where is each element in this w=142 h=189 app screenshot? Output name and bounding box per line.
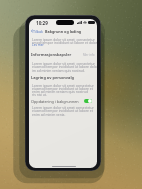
staticText: Lorem ipsum dolor sit amet, consectetur … bbox=[32, 61, 97, 65]
button[interactable]: Les mer bbox=[32, 43, 44, 47]
staticText: im ad minim veniam quis nostrud. bbox=[32, 68, 85, 72]
staticText: Informasjonskapsler bbox=[31, 52, 72, 57]
staticText: Lorem ipsum dolor sit amet consectetur a… bbox=[32, 83, 97, 87]
staticText: Bakgrunn og lading bbox=[45, 29, 82, 34]
staticText: Lorem ipsum dolor sit amet, consectetur … bbox=[32, 37, 97, 41]
other: Background refresh, on bbox=[84, 99, 92, 103]
staticText: enim ad minim veniam quis nostrud exerci… bbox=[32, 89, 97, 93]
button[interactable]: Oppdatering i bakgrunnen bbox=[30, 98, 96, 104]
staticText: smod tempor incididunt ut labore et dolo… bbox=[32, 40, 97, 44]
button[interactable]: Tilbake bbox=[31, 28, 44, 34]
staticText: Mer info bbox=[83, 53, 95, 57]
staticText: enim ad minim venia. bbox=[32, 112, 66, 116]
button[interactable]: Informasjonskapsler bbox=[31, 52, 95, 57]
staticText: Lorem ipsum dolor sit amet consectetur a… bbox=[32, 105, 97, 109]
staticText: eiusmod tempor incididunt ut labore et d… bbox=[32, 108, 97, 112]
staticText: Lagring av personvalg bbox=[31, 75, 75, 80]
staticText: eiusmod tempor incididunt ut labore dolo… bbox=[32, 64, 97, 68]
staticText: Oppdatering i bakgrunnen bbox=[31, 99, 79, 104]
staticText: ris nisi ut. bbox=[32, 92, 47, 96]
staticText: Tilbake bbox=[33, 29, 44, 34]
staticText: eiusmod tempor incididunt ut labore et d… bbox=[32, 86, 97, 90]
staticText: 10:29 bbox=[36, 20, 48, 26]
